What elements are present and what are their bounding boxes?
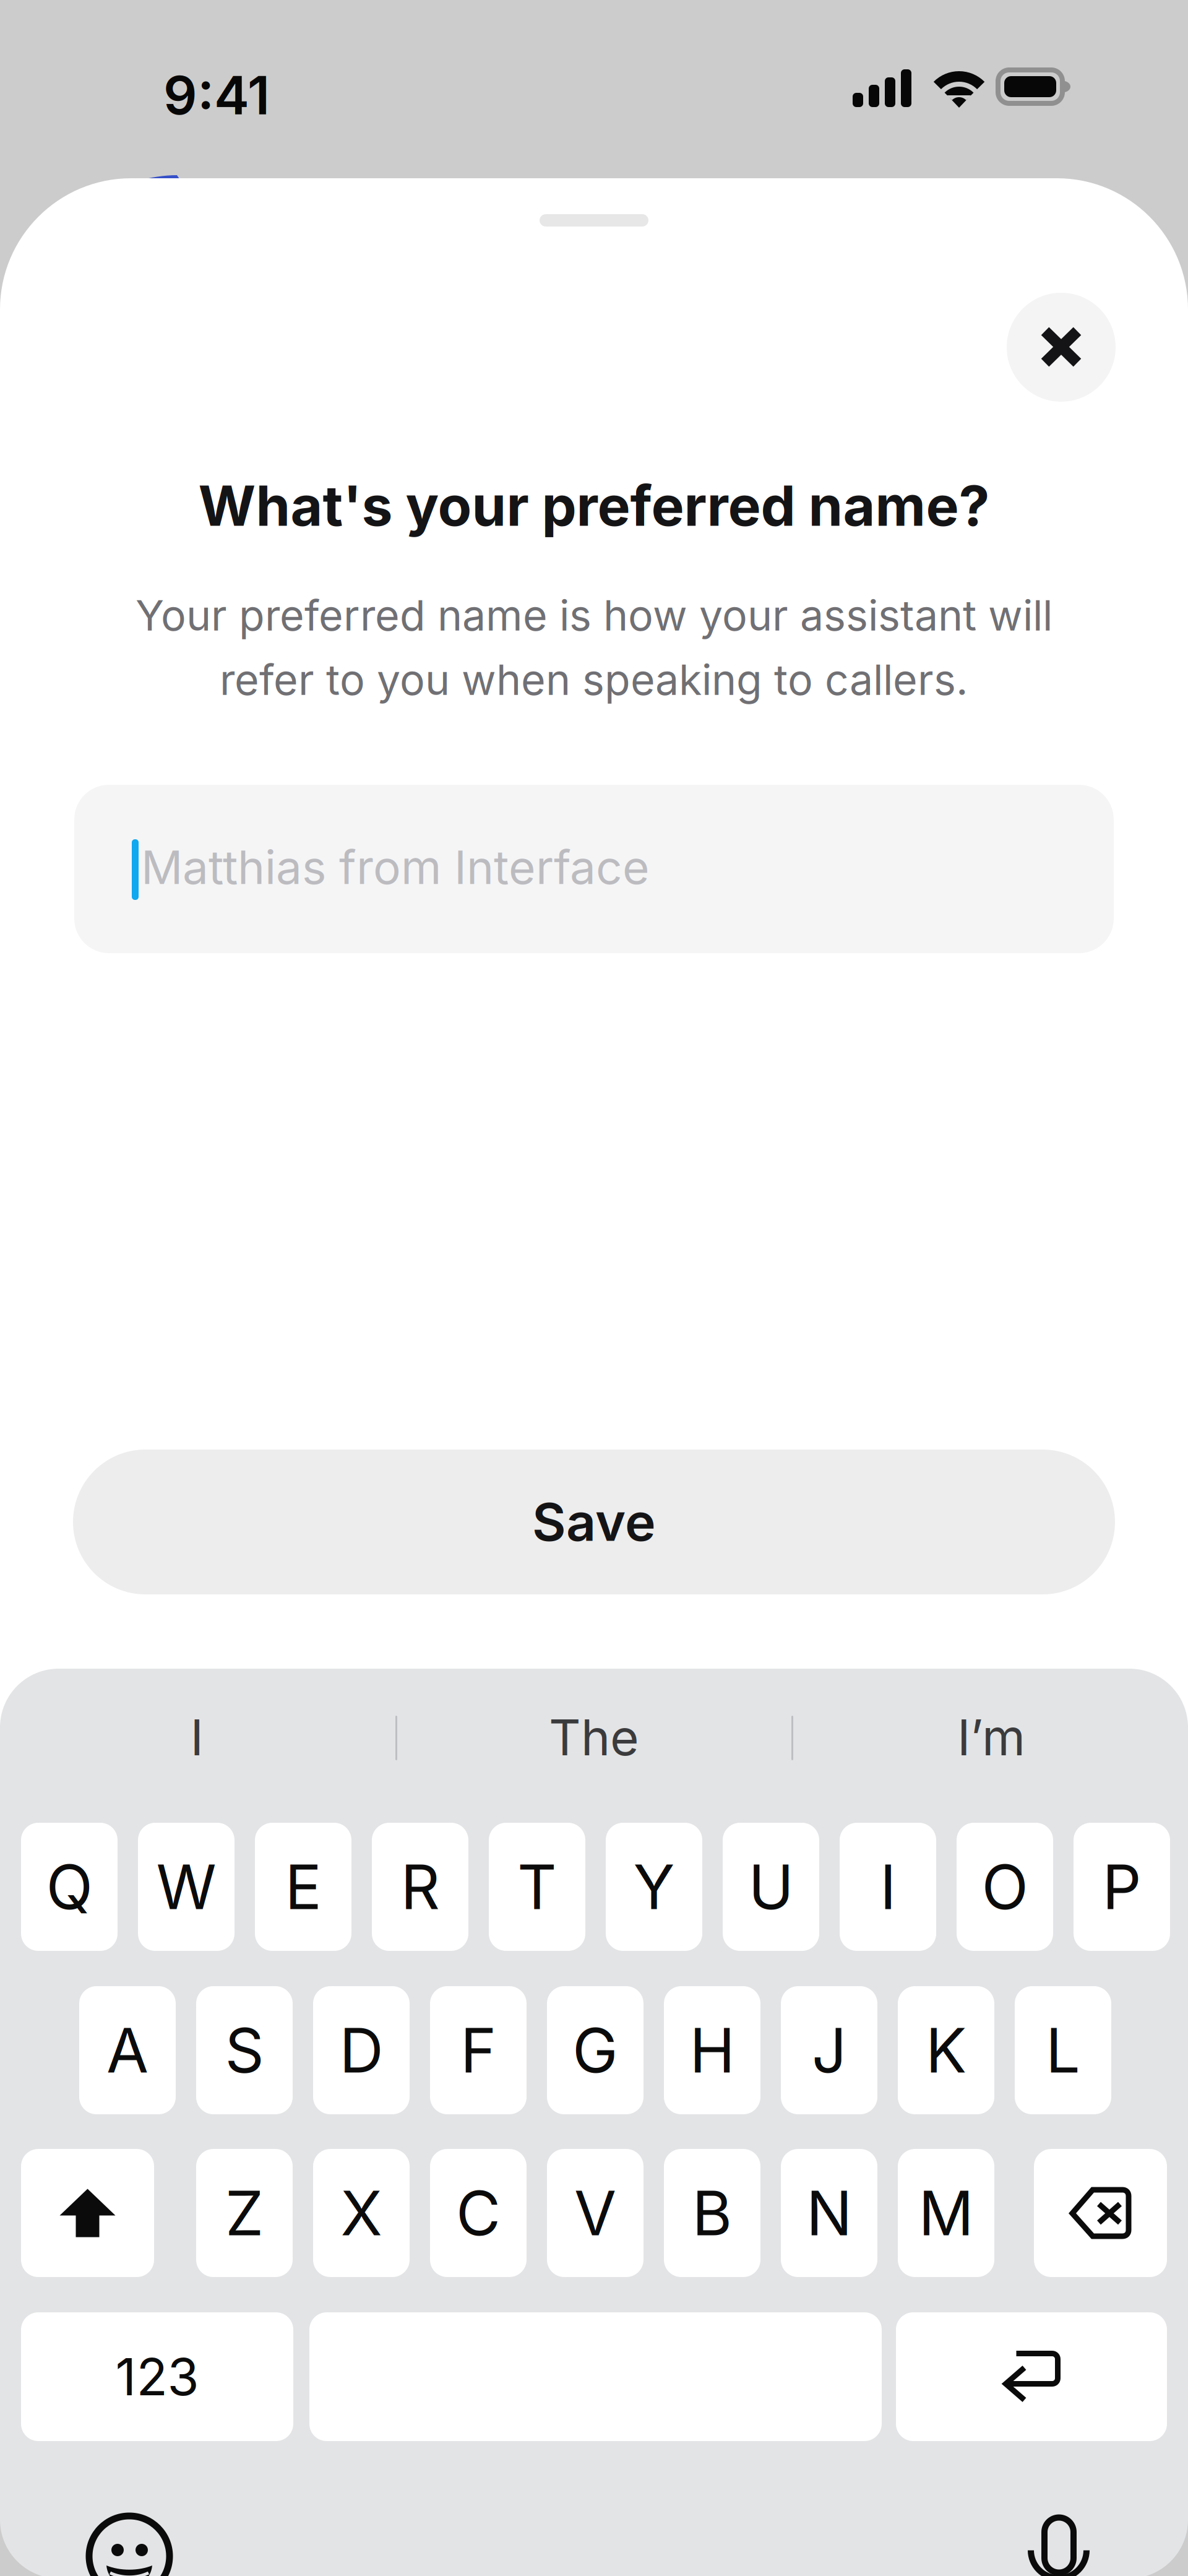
button[interactable]: F [430, 1986, 527, 2114]
staticText: U [748, 1850, 794, 1924]
staticText: I [190, 1707, 203, 1767]
staticText: I [880, 1850, 896, 1924]
button[interactable]: D [313, 1986, 410, 2114]
button[interactable]: G [547, 1986, 643, 2114]
staticText: L [1046, 2013, 1080, 2087]
button[interactable]: Z [196, 2149, 293, 2277]
button[interactable]: S [196, 1986, 293, 2114]
button[interactable]: Close [1007, 292, 1116, 402]
button[interactable]: B [664, 2149, 760, 2277]
button[interactable]: I [0, 1669, 394, 1806]
staticText: K [926, 2013, 966, 2087]
staticText: E [285, 1850, 321, 1924]
staticText: N [806, 2176, 852, 2250]
button[interactable]: U [723, 1823, 819, 1951]
staticText: H [690, 2013, 735, 2087]
button[interactable]: Save [73, 1450, 1115, 1594]
button[interactable]: Emoji [89, 2516, 170, 2576]
staticText: J [812, 2013, 846, 2087]
staticText: Q [46, 1850, 93, 1924]
button[interactable]: N [781, 2149, 877, 2277]
staticText: P [1102, 1850, 1141, 1924]
button[interactable]: J [781, 1986, 877, 2114]
staticText: I’m [957, 1707, 1025, 1767]
staticText: Y [633, 1850, 675, 1924]
button[interactable]: H [664, 1986, 760, 2114]
button[interactable]: Q [21, 1823, 118, 1951]
button[interactable]: C [430, 2149, 527, 2277]
button[interactable]: A [79, 1986, 176, 2114]
button[interactable]: Return [896, 2312, 1167, 2441]
button[interactable]: R [372, 1823, 468, 1951]
staticText: What's your preferred name? [198, 472, 990, 539]
button[interactable]: O [957, 1823, 1053, 1951]
staticText: R [401, 1850, 440, 1924]
button[interactable]: I’m [794, 1669, 1188, 1806]
button[interactable]: Y [606, 1823, 702, 1951]
staticText: W [156, 1850, 216, 1924]
staticText: A [106, 2013, 148, 2087]
button[interactable]: X [313, 2149, 410, 2277]
button[interactable]: M [898, 2149, 994, 2277]
button[interactable]: The [397, 1669, 791, 1806]
staticText: S [225, 2013, 264, 2087]
button[interactable]: I [840, 1823, 936, 1951]
staticText: C [456, 2176, 501, 2250]
button[interactable]: Dictate [1031, 2511, 1087, 2576]
staticText: X [341, 2176, 382, 2250]
staticText: M [919, 2176, 974, 2250]
staticText: 9:41 [163, 63, 270, 127]
staticText: Save [532, 1491, 656, 1553]
button[interactable]: T [489, 1823, 585, 1951]
button[interactable]: K [898, 1986, 994, 2114]
staticText: V [574, 2176, 616, 2250]
staticText: D [339, 2013, 383, 2087]
staticText: G [572, 2013, 618, 2087]
button[interactable]: Shift [21, 2149, 154, 2277]
button[interactable]: E [255, 1823, 351, 1951]
button[interactable]: 123 [21, 2312, 293, 2441]
staticText: F [460, 2013, 496, 2087]
staticText: Matthias from Interface [141, 839, 650, 895]
staticText: O [982, 1850, 1028, 1924]
button[interactable]: L [1015, 1986, 1111, 2114]
button[interactable]: W [138, 1823, 235, 1951]
staticText: B [692, 2176, 732, 2250]
staticText: Your preferred name is how your assistan… [136, 590, 1052, 641]
staticText: refer to you when speaking to callers. [220, 654, 968, 705]
staticText: T [517, 1850, 557, 1924]
button[interactable]: P [1074, 1823, 1170, 1951]
button[interactable]: V [547, 2149, 643, 2277]
staticText: Z [225, 2176, 264, 2250]
staticText: 123 [115, 2346, 199, 2408]
button[interactable]: Delete [1034, 2149, 1167, 2277]
staticText: The [549, 1707, 639, 1767]
